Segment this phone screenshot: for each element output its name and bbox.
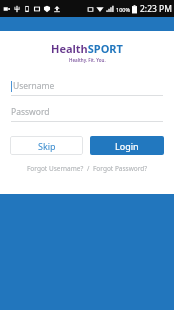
staticText: Healthy. Fit. You.	[69, 57, 106, 63]
staticText: Forgot Username?	[27, 164, 84, 173]
staticText: /	[87, 164, 90, 173]
staticText: 2:23 PM	[140, 3, 172, 15]
staticText: 100%	[116, 6, 131, 13]
button[interactable]: Username	[11, 80, 163, 96]
button[interactable]: Password	[11, 106, 163, 122]
staticText: Skip	[38, 140, 56, 152]
button[interactable]: Forgot Username?	[24, 163, 87, 174]
button[interactable]: Login	[90, 136, 164, 155]
staticText: HealthSPORT	[51, 41, 123, 56]
button[interactable]: Forgot Password?	[90, 163, 151, 174]
staticText: Forgot Password?	[93, 164, 148, 173]
button[interactable]: Skip	[10, 136, 83, 155]
staticText: Login	[115, 140, 139, 152]
staticText: Password	[11, 106, 50, 118]
staticText: Username	[13, 80, 55, 92]
